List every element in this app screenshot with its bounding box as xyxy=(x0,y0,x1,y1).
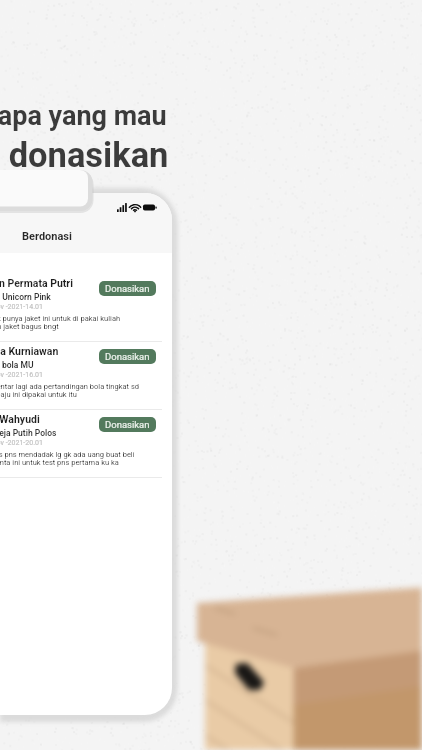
staticText: Donasikan xyxy=(105,283,150,294)
button[interactable]: Donasikan xyxy=(99,417,156,432)
staticText: dan jaket bagus bngt xyxy=(0,322,59,331)
staticText: kamu donasikan xyxy=(0,135,169,175)
staticText: 15 Nov -2021-14.01 xyxy=(0,303,43,311)
staticText: dan baju ini dipakai untuk itu xyxy=(0,390,77,399)
staticText: dan diminta ini untuk test pns pertama k… xyxy=(0,458,119,467)
staticText: Rena Kurniawan xyxy=(0,345,59,357)
staticText: 15 Nov -2021-20.01 xyxy=(0,439,43,447)
staticText: Donasikan xyxy=(105,419,150,430)
staticText: Siapa yang mau xyxy=(0,100,167,132)
staticText: Aku gk punya jaket ini untuk di pakai ku… xyxy=(0,314,121,323)
staticText: Berdonasi xyxy=(22,230,72,243)
button[interactable]: Donasikan xyxy=(99,281,156,296)
staticText: Ayun Permata Putri xyxy=(0,277,73,289)
button[interactable]: Ayun Permata Putri xyxy=(0,274,172,341)
button[interactable]: Adi Wahyudi xyxy=(0,410,172,477)
staticText: 15 Nov -2021-16.01 xyxy=(0,371,43,379)
button[interactable]: Rena Kurniawan xyxy=(0,342,172,409)
staticText: Jaket Unicorn Pink xyxy=(0,292,51,302)
staticText: Donasikan xyxy=(105,351,150,362)
button[interactable]: Berdonasi xyxy=(0,220,172,253)
staticText: Test tes pns mendadak lg gk ada uang bua… xyxy=(0,450,135,459)
staticText: Kemeja Putih Polos xyxy=(0,428,57,438)
staticText: Adi Wahyudi xyxy=(0,413,40,425)
button[interactable]: Donasikan xyxy=(99,349,156,364)
other: Signal, wifi and battery status xyxy=(117,203,156,212)
staticText: Sebentar lagi ada pertandingan bola ting… xyxy=(0,382,139,391)
staticText: Baju bola MU xyxy=(0,360,34,370)
